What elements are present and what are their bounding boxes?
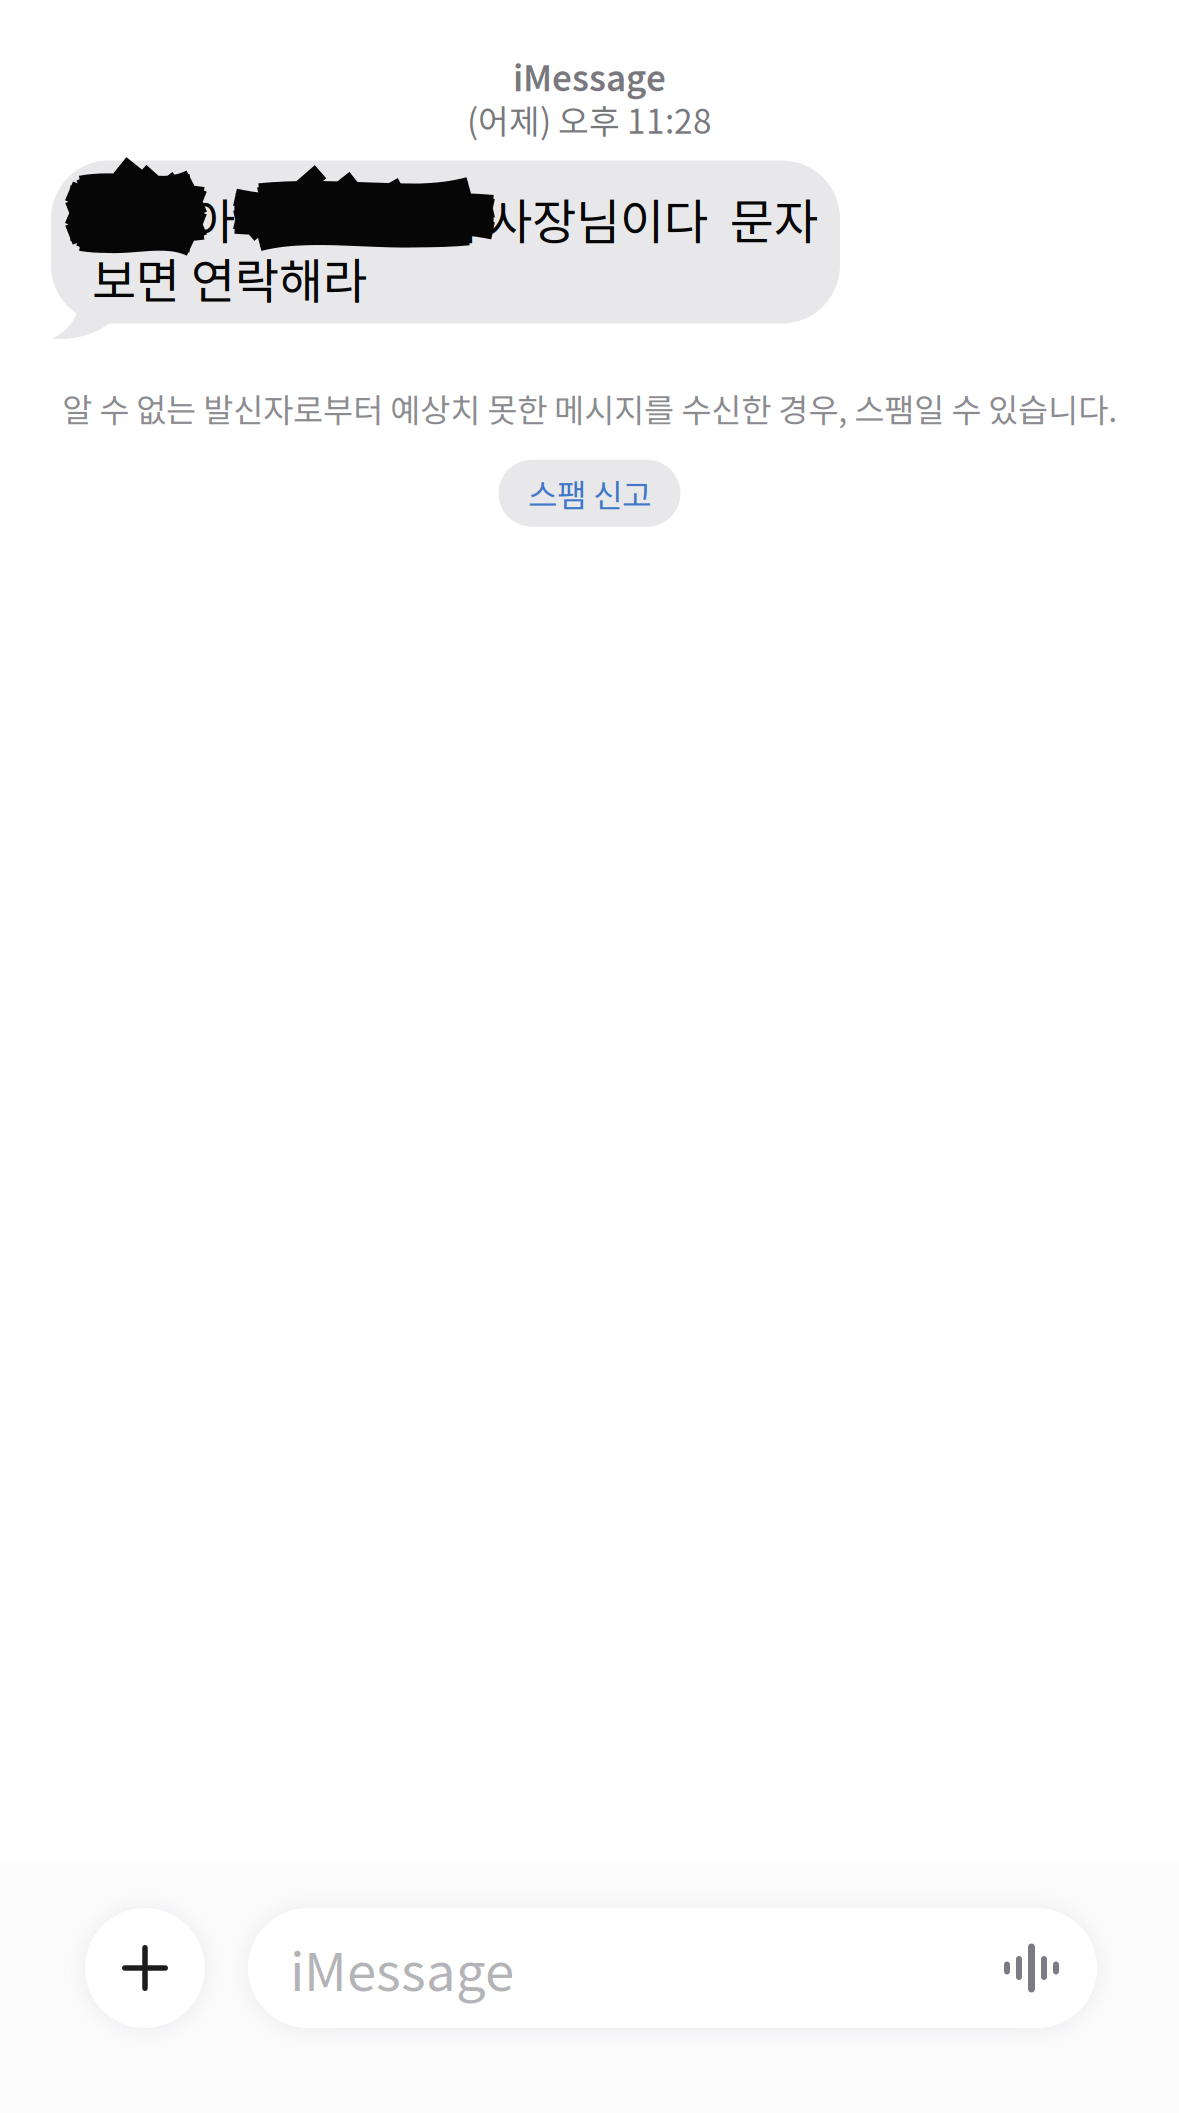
staticText: iMessage xyxy=(290,1930,514,2006)
staticText: 스팸 신고 xyxy=(528,470,651,516)
button[interactable]: Add attachment xyxy=(85,1908,205,2028)
staticText: 보면 연락해라 xyxy=(92,243,367,312)
staticText: 알 수 없는 발신자로부터 예상치 못한 메시지를 수신한 경우, 스팸일 수 … xyxy=(62,384,1117,432)
button[interactable]: 스팸 신고 xyxy=(498,460,680,527)
staticText: iMessage xyxy=(513,51,666,101)
staticText: 난 너아 의 저번주에 사장님이다 문자 xyxy=(92,183,818,253)
button[interactable]: iMessage xyxy=(248,1908,1097,2028)
staticText: (어제) 오후 11:28 xyxy=(467,95,712,143)
